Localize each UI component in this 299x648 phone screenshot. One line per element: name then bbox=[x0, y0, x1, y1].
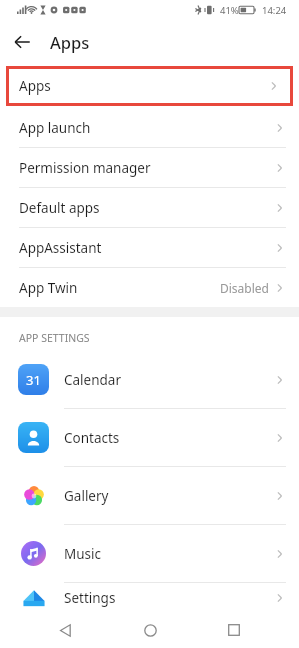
button[interactable]: Home bbox=[130, 612, 170, 648]
staticText: Disabled bbox=[220, 280, 269, 296]
staticText: 14:24 bbox=[262, 4, 287, 17]
staticText: Settings bbox=[64, 589, 116, 607]
staticText: APP SETTINGS bbox=[19, 331, 90, 345]
staticText: AppAssistant bbox=[19, 239, 102, 257]
staticText: Calendar bbox=[64, 371, 121, 389]
button[interactable]: 31 bbox=[0, 351, 299, 408]
staticText: Contacts bbox=[64, 429, 120, 447]
button[interactable]: Back bbox=[0, 20, 44, 64]
staticText: 31 bbox=[26, 371, 41, 389]
button[interactable]: Apps bbox=[6, 66, 293, 106]
button[interactable]: Default apps bbox=[0, 188, 299, 227]
staticText: App Twin bbox=[19, 279, 78, 297]
staticText: Apps bbox=[19, 77, 51, 95]
staticText: Permission manager bbox=[19, 159, 151, 177]
staticText: Apps bbox=[50, 31, 90, 53]
button[interactable]: Music bbox=[0, 525, 299, 582]
staticText: App launch bbox=[19, 119, 91, 137]
button[interactable]: AppAssistant bbox=[0, 228, 299, 267]
button[interactable]: Permission manager bbox=[0, 148, 299, 187]
button[interactable]: App Twin bbox=[0, 268, 299, 307]
staticText: Gallery bbox=[64, 487, 109, 505]
staticText: Music bbox=[64, 545, 102, 563]
button[interactable]: App launch bbox=[0, 108, 299, 147]
button[interactable]: Contacts bbox=[0, 409, 299, 466]
button[interactable]: Gallery bbox=[0, 467, 299, 524]
button[interactable]: Settings bbox=[0, 583, 299, 612]
staticText: Default apps bbox=[19, 199, 100, 217]
button[interactable]: Back bbox=[45, 612, 85, 648]
button[interactable]: Recent apps bbox=[214, 612, 254, 648]
staticText: 41% bbox=[220, 4, 239, 17]
